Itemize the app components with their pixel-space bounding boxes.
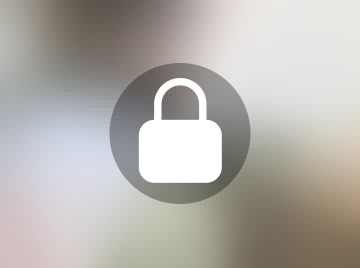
button[interactable]: Content locked [0,0,360,268]
